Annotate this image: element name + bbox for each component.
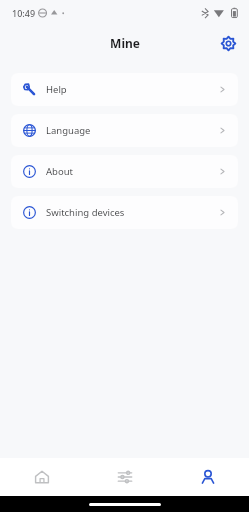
staticText: Mine [110,35,140,51]
staticText: About [46,165,73,178]
staticText: Language [46,124,91,137]
button[interactable]: Switching devices [11,196,238,229]
button[interactable]: Mine [166,458,249,496]
button[interactable]: Controls [83,458,166,496]
button[interactable]: Help [11,73,238,106]
button[interactable]: Settings [215,30,241,56]
button[interactable]: About [11,155,238,188]
staticText: Help [46,83,67,96]
button[interactable]: Language [11,114,238,147]
button[interactable]: Home [0,458,83,496]
staticText: 10:49 [12,7,36,19]
staticText: Switching devices [46,206,125,219]
